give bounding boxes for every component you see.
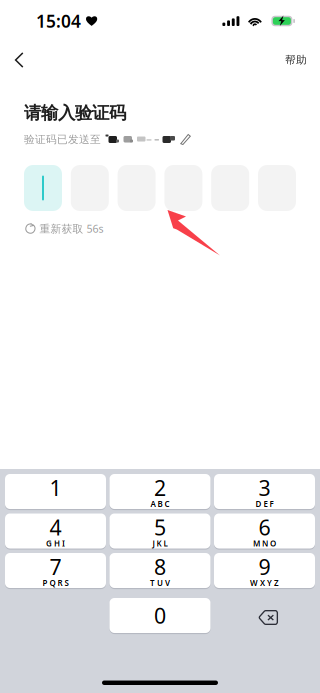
staticText: 3: [258, 474, 270, 502]
staticText: 5: [154, 513, 166, 541]
staticText: M N O: [253, 538, 276, 549]
button[interactable]: Edit phone number: [180, 133, 191, 145]
staticText: 6: [258, 513, 270, 541]
button[interactable]: 帮助: [263, 42, 307, 78]
button[interactable]: 9: [214, 553, 315, 588]
button[interactable]: Back: [14, 42, 48, 78]
button[interactable]: 2: [109, 474, 210, 509]
staticText: 8: [154, 553, 166, 581]
staticText: 1: [49, 474, 61, 502]
staticText: P Q R S: [42, 578, 68, 588]
staticText: W X Y Z: [250, 578, 279, 588]
button[interactable]: 8: [109, 553, 210, 588]
staticText: 2: [154, 474, 166, 502]
staticText: T U V: [150, 578, 170, 588]
staticText: D E F: [255, 499, 273, 509]
staticText: J K L: [152, 538, 167, 549]
button[interactable]: 3: [214, 474, 315, 509]
button[interactable]: 重新获取 56s: [25, 221, 103, 236]
button[interactable]: 1: [5, 474, 106, 509]
staticText: 验证码已发送至: [24, 133, 101, 146]
button[interactable]: Verification code digit: [24, 165, 62, 211]
staticText: A B C: [150, 499, 169, 509]
staticText: 请输入验证码: [24, 102, 126, 124]
button[interactable]: 0: [109, 598, 210, 633]
staticText: 9: [258, 553, 270, 581]
button[interactable]: Verification code digit: [164, 165, 202, 211]
button[interactable]: 7: [5, 553, 106, 588]
staticText: 重新获取 56s: [39, 221, 103, 236]
button[interactable]: 5: [109, 513, 210, 548]
staticText: 帮助: [285, 53, 307, 66]
button[interactable]: 6: [214, 513, 315, 548]
staticText: 0: [154, 601, 166, 630]
button[interactable]: 4: [5, 513, 106, 548]
staticText: G H I: [46, 538, 65, 549]
staticText: 15:04: [36, 9, 81, 32]
button[interactable]: Delete: [214, 598, 315, 633]
staticText: 4: [49, 513, 61, 541]
staticText: 7: [49, 553, 61, 581]
